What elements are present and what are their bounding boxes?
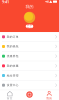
button[interactable]: Scan [20, 90, 39, 100]
button[interactable]: 优惠券包 [0, 51, 59, 61]
staticText: 优惠券包 [7, 54, 19, 58]
staticText: 设置中心 [7, 84, 19, 87]
button[interactable]: 首页 [0, 90, 20, 100]
button[interactable]: 会员中心 [26, 24, 33, 28]
staticText: 地址管理 [7, 74, 19, 77]
button[interactable]: 设置中心 [0, 80, 59, 90]
button[interactable]: 我的钱包 [0, 42, 59, 51]
staticText: 我的订单 [7, 35, 19, 38]
staticText: 会员中心 [26, 23, 32, 30]
button[interactable]: 地址管理 [0, 71, 59, 81]
staticText: 首页 [7, 97, 13, 100]
staticText: 我的钱包 [7, 45, 19, 48]
staticText: 9:41 [2, 0, 9, 4]
staticText: 我的 [46, 97, 52, 100]
button[interactable]: 我的收藏 [0, 61, 59, 71]
staticText: 我的收藏 [7, 64, 19, 67]
button[interactable]: 我的订单 [0, 32, 59, 42]
button[interactable]: 我的 [39, 90, 59, 100]
staticText: 我的 [25, 4, 33, 9]
